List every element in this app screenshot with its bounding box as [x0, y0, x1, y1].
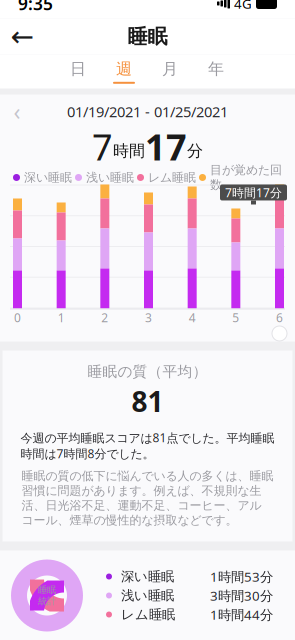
staticText: 深い睡眠 [121, 568, 174, 585]
staticText: 7 [92, 123, 113, 170]
staticText: 7時間17分 [225, 184, 282, 200]
staticText: 2 [101, 309, 108, 325]
button[interactable]: 戻る [0, 18, 44, 54]
staticText: ← [10, 21, 33, 52]
staticText: 睡眠の質（平均） [87, 362, 207, 380]
staticText: 浅い睡眠 [86, 170, 134, 185]
button[interactable]: 日 [55, 54, 101, 88]
staticText: 4G [234, 0, 252, 12]
staticText: 目が覚めた回数 [210, 163, 282, 192]
staticText: 9:35 [18, 0, 53, 15]
button[interactable]: 月 [147, 54, 193, 88]
staticText: 日 [70, 59, 86, 79]
staticText: 4 [189, 309, 196, 325]
staticText: 統計 [38, 595, 56, 607]
staticText: レム睡眠 [121, 606, 175, 623]
staticText: 81 [131, 382, 163, 420]
staticText: 年 [208, 59, 224, 79]
staticText: 月 [162, 59, 178, 79]
staticText: 深い睡眠 [24, 170, 72, 185]
button[interactable]: 年 [193, 54, 239, 88]
staticText: 今週の平均睡眠スコアは81点でした。平均睡眠時間は7時間8分でした。 [20, 430, 274, 462]
staticText: レム睡眠 [148, 170, 196, 185]
staticText: 時間 [113, 141, 145, 161]
staticText: 浅い睡眠 [121, 587, 174, 604]
button[interactable]: 週 [101, 54, 147, 88]
staticText: 1時間44分 [210, 606, 273, 623]
staticText: 睡眠 [38, 584, 56, 595]
staticText: 3 [145, 309, 152, 325]
button[interactable]: 前の週 [0, 96, 34, 126]
staticText: 1時間53分 [210, 568, 273, 585]
staticText: 6 [276, 309, 283, 325]
staticText: 睡眠 [127, 24, 167, 49]
staticText: 5 [232, 309, 239, 325]
staticText: 3時間30分 [210, 587, 273, 604]
staticText: 1 [58, 309, 65, 325]
staticText: 分 [187, 141, 203, 161]
staticText: 01/19/2021 - 01/25/2021 [67, 102, 228, 121]
staticText: 睡眠の質の低下に悩んでいる人の多くは、睡眠習慣に問題があります。例えば、不規則な… [21, 469, 273, 528]
staticText: 17 [145, 123, 187, 170]
staticText: 0 [14, 309, 21, 325]
staticText: 週 [116, 59, 132, 79]
staticText: ‹ [13, 96, 20, 126]
